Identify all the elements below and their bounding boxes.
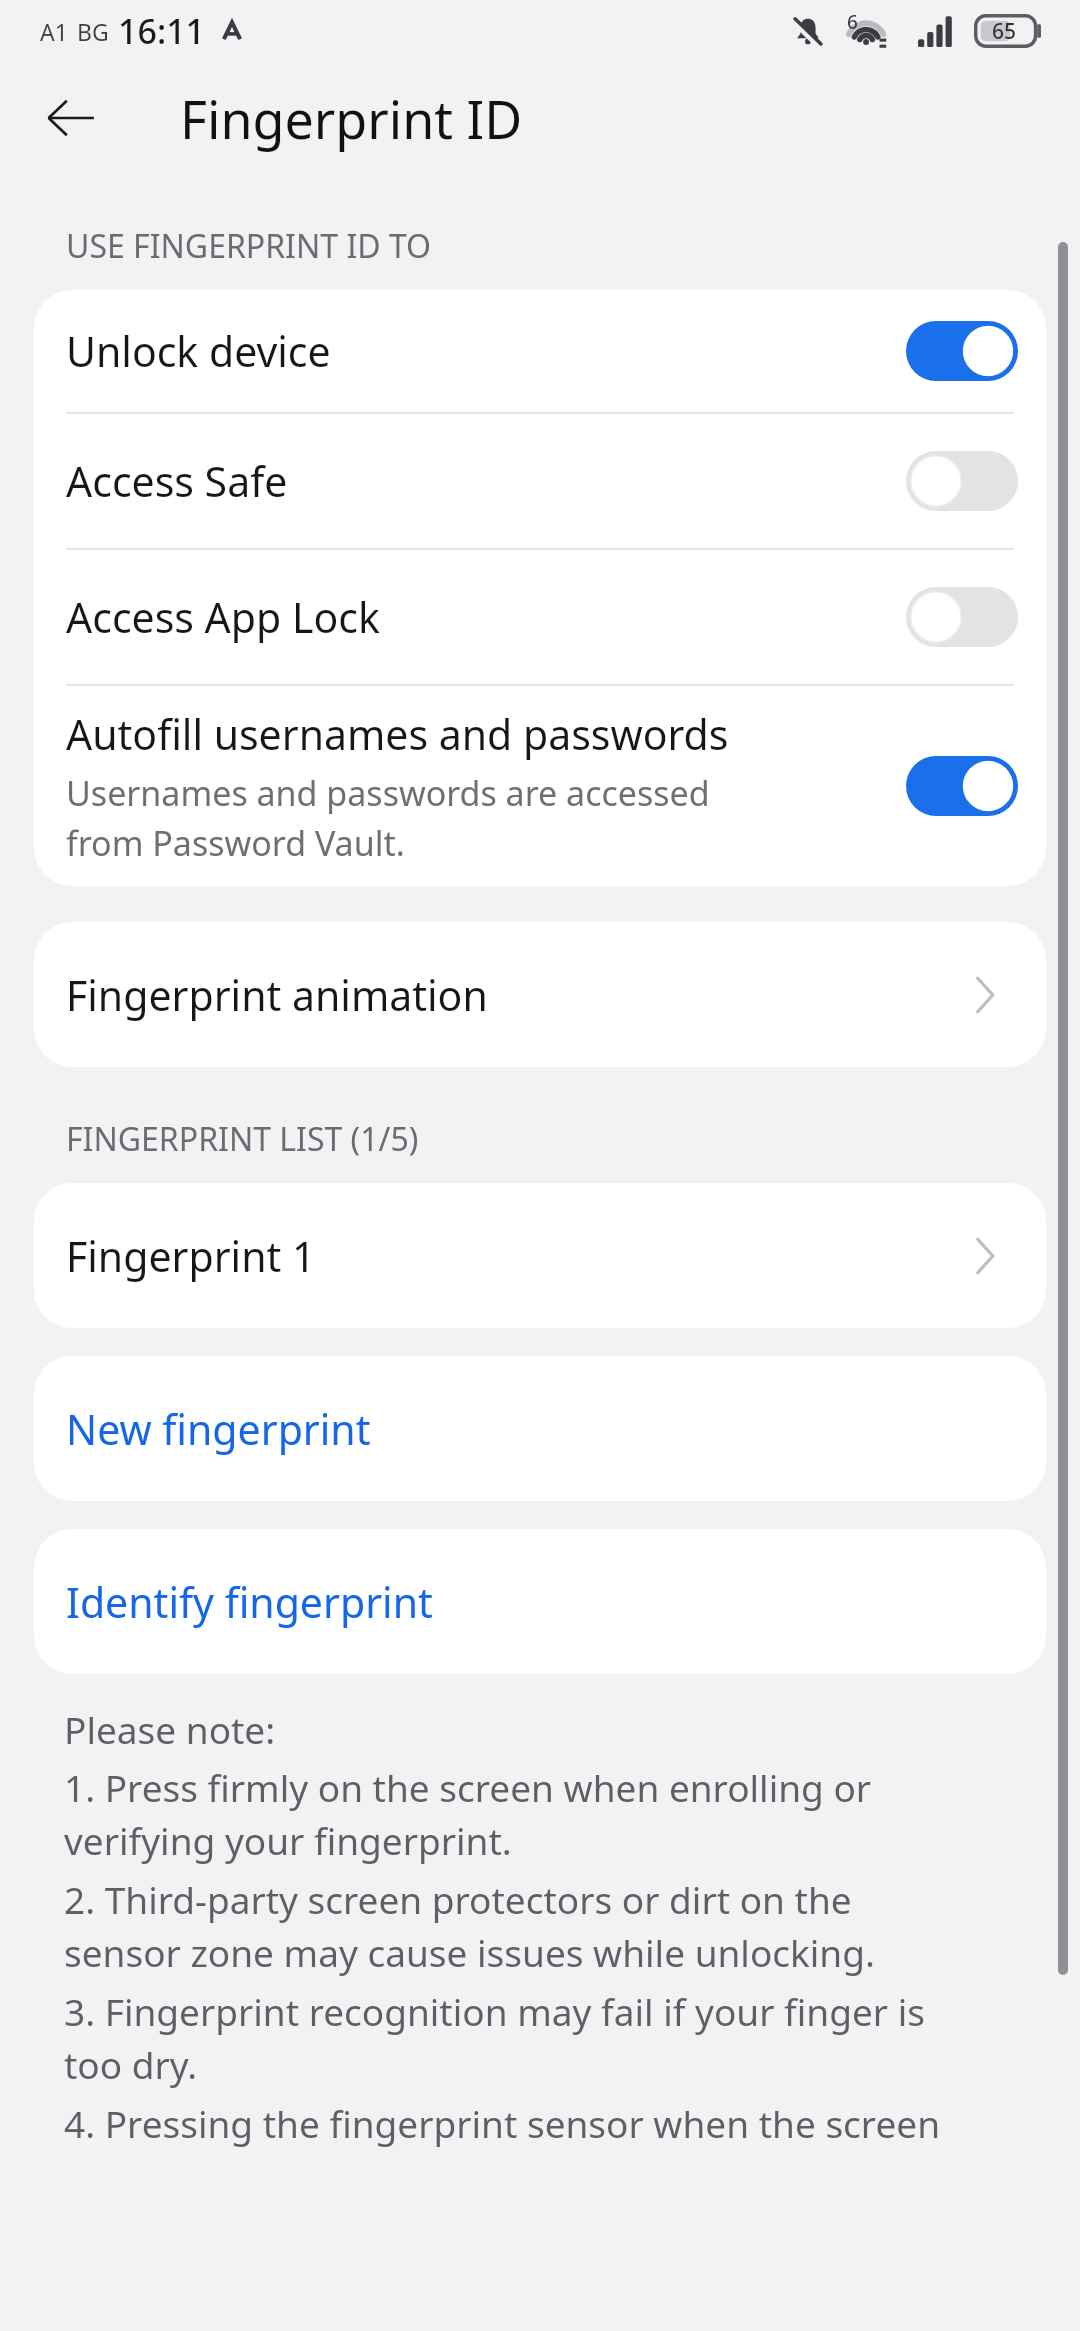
staticText: Unlock device xyxy=(66,323,331,379)
staticText: Fingerprint ID xyxy=(180,83,523,154)
button[interactable]: Unlock device xyxy=(34,290,1046,412)
staticText: 3. Fingerprint recognition may fail if y… xyxy=(64,1986,926,2090)
staticText: A1 xyxy=(40,16,68,47)
staticText: USE FINGERPRINT ID TO xyxy=(66,224,432,268)
button[interactable]: Identify fingerprint xyxy=(34,1529,1046,1674)
staticText: 16:11 xyxy=(118,8,206,54)
staticText: Please note: xyxy=(64,1704,276,1754)
button[interactable]: Fingerprint animation xyxy=(34,922,1046,1067)
button[interactable]: On xyxy=(906,756,1018,816)
staticText: Fingerprint 1 xyxy=(66,1228,316,1284)
staticText: Access App Lock xyxy=(66,589,380,645)
staticText: Usernames and passwords are accessed fro… xyxy=(66,770,710,866)
staticText: Access Safe xyxy=(66,453,288,509)
staticText: Identify fingerprint xyxy=(66,1574,433,1630)
staticText: Autofill usernames and passwords xyxy=(66,706,729,762)
button[interactable]: On xyxy=(906,321,1018,381)
staticText: 4. Pressing the fingerprint sensor when … xyxy=(64,2098,941,2148)
staticText: Fingerprint animation xyxy=(66,967,488,1023)
staticText: 6 xyxy=(847,9,858,35)
button[interactable]: Access App Lock xyxy=(34,550,1046,684)
staticText: 65 xyxy=(992,17,1017,46)
button[interactable]: Access Safe xyxy=(34,414,1046,548)
staticText: BG xyxy=(77,16,109,47)
staticText: 1. Press firmly on the screen when enrol… xyxy=(64,1762,872,1866)
button[interactable]: New fingerprint xyxy=(34,1356,1046,1501)
button[interactable]: Autofill usernames and passwords xyxy=(34,686,1046,886)
button[interactable]: Back xyxy=(38,85,104,151)
staticText: New fingerprint xyxy=(66,1401,371,1457)
staticText: 2. Third-party screen protectors or dirt… xyxy=(64,1874,875,1978)
button[interactable]: Fingerprint 1 xyxy=(34,1183,1046,1328)
button[interactable]: Off xyxy=(906,587,1018,647)
button[interactable]: Off xyxy=(906,451,1018,511)
staticText: FINGERPRINT LIST (1/5) xyxy=(66,1117,419,1161)
